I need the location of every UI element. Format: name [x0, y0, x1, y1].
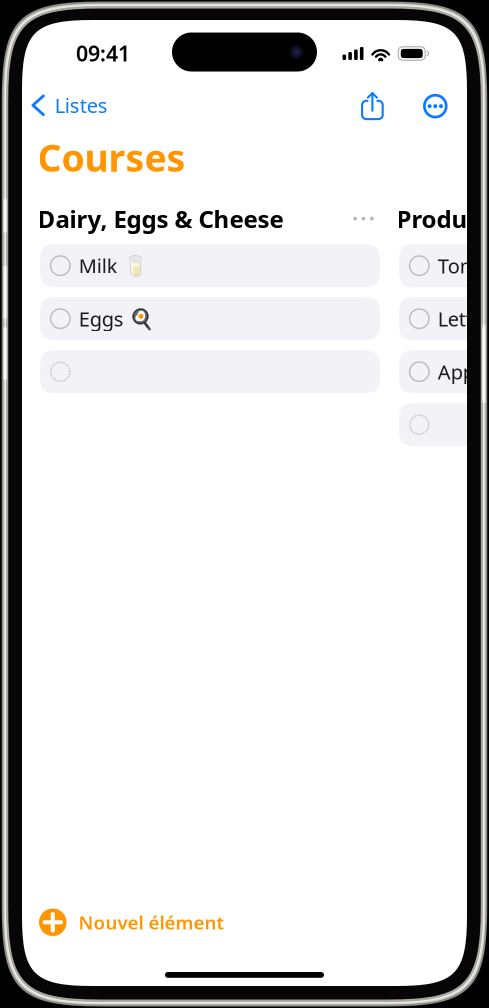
button[interactable]: Section options [353, 211, 374, 227]
button[interactable]: Apples [399, 350, 489, 393]
button[interactable]: More options [418, 88, 453, 125]
staticText: 09:41 [76, 39, 130, 67]
button[interactable]: Tomatoes [399, 244, 489, 287]
staticText: Eggs 🍳 [79, 305, 154, 332]
staticText: Dairy, Eggs & Cheese [37, 203, 283, 235]
button[interactable] [399, 403, 489, 446]
button[interactable]: Milk 🥛 [40, 244, 380, 287]
staticText: Produce [396, 203, 489, 235]
button[interactable]: Listes [26, 85, 113, 126]
staticText: Nouvel élément [79, 910, 225, 935]
button[interactable]: Lettuce [399, 297, 489, 340]
staticText: Courses [37, 132, 185, 182]
staticText: Lettuce [438, 305, 489, 332]
button[interactable]: Share [356, 87, 389, 125]
staticText: Tomatoes [438, 252, 489, 279]
button[interactable]: Eggs 🍳 [40, 297, 380, 340]
staticText: Apples [438, 358, 489, 385]
staticText: Listes [55, 92, 108, 119]
staticText: Milk 🥛 [79, 252, 148, 279]
button[interactable]: Nouvel élément [33, 902, 230, 942]
